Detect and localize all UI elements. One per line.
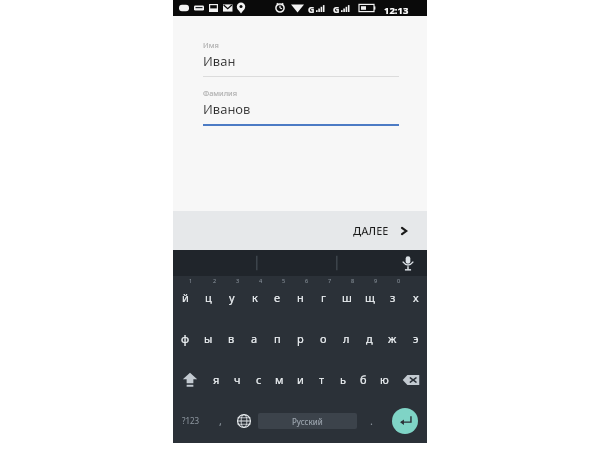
button[interactable]: ш [335, 276, 358, 318]
button[interactable]: а [243, 318, 266, 359]
staticText: Иван [203, 52, 236, 70]
staticText: Русский [292, 416, 323, 427]
staticText: в [228, 331, 235, 346]
staticText: 12:13 [384, 4, 409, 17]
staticText: й [182, 290, 189, 305]
staticText: 2 [213, 277, 217, 284]
staticText: G [308, 3, 315, 15]
button[interactable]: б [353, 359, 374, 400]
staticText: ю [380, 372, 389, 387]
staticText: 4 [259, 277, 263, 284]
button[interactable]: д [358, 318, 381, 359]
button[interactable]: ю [374, 359, 395, 400]
staticText: 8 [351, 277, 355, 284]
button[interactable]: й [173, 276, 197, 318]
button[interactable]: ф [173, 318, 197, 359]
button[interactable]: з [381, 276, 404, 318]
staticText: 9 [374, 277, 378, 284]
staticText: а [251, 331, 258, 346]
button[interactable]: у [220, 276, 243, 318]
staticText: . [370, 413, 373, 428]
staticText: е [274, 290, 281, 305]
button[interactable]: ь [332, 359, 353, 400]
button[interactable]: ?123 [173, 400, 208, 441]
staticText: 5 [282, 277, 286, 284]
staticText: , [219, 413, 222, 428]
button[interactable]: е [266, 276, 289, 318]
staticText: Фамилия [203, 88, 238, 98]
button[interactable]: с [248, 359, 269, 400]
staticText: у [229, 290, 235, 305]
staticText: Имя [203, 40, 219, 50]
staticText: х [413, 290, 419, 305]
staticText: я [213, 372, 220, 387]
staticText: с [256, 372, 262, 387]
staticText: ф [181, 331, 190, 346]
button[interactable]: Enter [392, 408, 418, 434]
staticText: г [321, 290, 326, 305]
staticText: ч [234, 372, 241, 387]
button[interactable]: ч [227, 359, 248, 400]
button[interactable]: э [404, 318, 427, 359]
staticText: 6 [305, 277, 309, 284]
button[interactable]: г [312, 276, 335, 318]
staticText: 0 [397, 277, 401, 284]
button[interactable]: Shift [173, 359, 206, 400]
staticText: б [360, 372, 367, 387]
staticText: к [252, 290, 258, 305]
staticText: и [297, 372, 304, 387]
staticText: G [333, 3, 340, 15]
button[interactable]: ж [381, 318, 404, 359]
button[interactable]: щ [358, 276, 381, 318]
button[interactable]: Backspace [395, 359, 427, 400]
staticText: Иванов [203, 100, 251, 118]
staticText: м [275, 372, 284, 387]
button[interactable]: , [208, 400, 232, 441]
button[interactable]: ДАЛЕЕ [353, 223, 409, 238]
staticText: ж [388, 331, 397, 346]
button[interactable]: п [266, 318, 289, 359]
button[interactable]: ы [197, 318, 220, 359]
button[interactable]: р [289, 318, 312, 359]
staticText: ш [342, 290, 352, 305]
staticText: 7 [328, 277, 332, 284]
staticText: р [297, 331, 304, 346]
staticText: ДАЛЕЕ [353, 223, 389, 238]
staticText: ь [340, 372, 346, 387]
staticText: о [320, 331, 327, 346]
button[interactable]: Change language [232, 400, 256, 441]
staticText: 1 [189, 277, 193, 284]
button[interactable]: м [269, 359, 290, 400]
button[interactable]: л [335, 318, 358, 359]
staticText: 3 [236, 277, 240, 284]
button[interactable]: . [359, 400, 383, 441]
staticText: н [297, 290, 304, 305]
button[interactable]: о [312, 318, 335, 359]
button[interactable]: х [404, 276, 427, 318]
staticText: д [366, 331, 373, 346]
button[interactable]: Русский [258, 413, 357, 429]
staticText: п [274, 331, 281, 346]
staticText: э [413, 331, 419, 346]
button[interactable]: и [290, 359, 311, 400]
button[interactable]: Voice input [399, 254, 417, 272]
staticText: ?123 [182, 415, 200, 426]
staticText: ц [205, 290, 212, 305]
button[interactable]: в [220, 318, 243, 359]
staticText: ы [204, 331, 213, 346]
staticText: з [390, 290, 396, 305]
button[interactable]: т [311, 359, 332, 400]
button[interactable]: н [289, 276, 312, 318]
staticText: т [319, 372, 325, 387]
button[interactable]: к [243, 276, 266, 318]
staticText: л [343, 331, 350, 346]
button[interactable]: я [206, 359, 227, 400]
button[interactable]: ц [197, 276, 220, 318]
staticText: щ [365, 290, 375, 305]
